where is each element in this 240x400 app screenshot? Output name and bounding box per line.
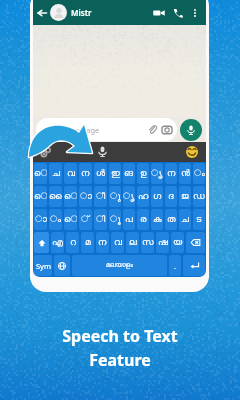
button[interactable]: പ <box>123 209 135 230</box>
staticText: ൂ <box>110 215 121 224</box>
button[interactable]: ു <box>109 186 121 207</box>
staticText: Speech to Text <box>62 325 178 347</box>
button[interactable]: ദ <box>165 186 177 207</box>
staticText: ി <box>96 215 106 224</box>
button[interactable]: ക <box>151 209 163 230</box>
button[interactable]: ാ <box>79 186 92 207</box>
staticText: യ <box>173 238 183 247</box>
staticText: ഉ <box>140 169 147 178</box>
staticText: ഇ <box>111 169 120 178</box>
button[interactable]: ൻ <box>179 163 191 184</box>
button[interactable]: ങ <box>123 163 135 184</box>
staticText: ൊ <box>64 192 77 201</box>
staticText: ല <box>129 238 137 247</box>
staticText: ൃ <box>151 169 163 178</box>
staticText: Feature <box>89 349 151 371</box>
button[interactable]: ച <box>179 209 191 230</box>
button[interactable]: Enter <box>183 255 205 276</box>
staticText: ഗ <box>153 192 162 201</box>
button[interactable]: ം <box>193 163 205 184</box>
button[interactable]: എ <box>51 232 64 253</box>
button[interactable]: വ <box>111 232 124 253</box>
button[interactable]: ം <box>49 209 62 230</box>
staticText: . <box>174 261 177 271</box>
staticText: ൻ <box>181 169 190 178</box>
button[interactable]: ഉ <box>137 163 149 184</box>
button[interactable]: വ <box>64 163 77 184</box>
button[interactable]: ഷ <box>156 232 169 253</box>
staticText: ര <box>140 215 147 224</box>
staticText: ീ <box>96 192 106 201</box>
button[interactable]: ൃ <box>123 186 135 207</box>
button[interactable]: ഹ <box>137 186 149 207</box>
button[interactable]: ൾ <box>94 163 107 184</box>
button[interactable]: Emoji <box>186 146 198 158</box>
button[interactable]: Type a message <box>36 118 177 141</box>
staticText: ാ <box>80 192 92 201</box>
staticText: ട <box>196 215 202 224</box>
button[interactable]: റ <box>66 232 79 253</box>
button[interactable]: ജ <box>179 186 191 207</box>
button[interactable]: Back <box>37 8 47 18</box>
button[interactable]: ത <box>165 209 177 230</box>
button[interactable]: ഗ <box>151 186 163 207</box>
button[interactable]: Voice input <box>97 146 108 157</box>
button[interactable]: ് <box>79 209 92 230</box>
button[interactable]: ഇ <box>109 163 121 184</box>
button[interactable]: Video call <box>153 7 165 19</box>
button[interactable]: ൈ <box>49 186 62 207</box>
staticText: ൌ <box>34 192 47 201</box>
button[interactable]: Call <box>173 8 183 18</box>
staticText: ജ <box>181 192 189 201</box>
button[interactable]: ന <box>96 232 109 253</box>
button[interactable]: Voice message <box>180 119 202 141</box>
staticText: ൊ <box>64 215 77 224</box>
button[interactable]: ല <box>126 232 139 253</box>
staticText: സ <box>142 238 154 247</box>
staticText: ച <box>52 169 60 178</box>
button[interactable]: ൂ <box>109 209 121 230</box>
button[interactable]: ൊ <box>64 186 77 207</box>
button[interactable]: ീ <box>94 186 107 207</box>
staticText: എ <box>52 238 63 247</box>
staticText: ാ <box>35 215 47 224</box>
button[interactable]: സ <box>141 232 154 253</box>
button[interactable]: ട <box>193 209 205 230</box>
button[interactable]: മലയാളം <box>72 255 167 276</box>
staticText: ന <box>167 169 176 178</box>
button[interactable]: ൃ <box>151 163 163 184</box>
button[interactable]: Shift <box>34 232 49 253</box>
button[interactable]: ച <box>49 163 62 184</box>
staticText: മ <box>85 238 91 247</box>
button[interactable]: ൌ <box>34 186 47 207</box>
button[interactable]: മ <box>81 232 94 253</box>
button[interactable]: ര <box>137 209 149 230</box>
button[interactable]: ൊ <box>34 163 47 184</box>
staticText: ം <box>50 215 61 224</box>
staticText: ൊ <box>34 169 47 178</box>
button[interactable]: Backspace <box>186 232 205 253</box>
staticText: ൾ <box>96 169 106 178</box>
button[interactable]: Settings <box>40 147 51 158</box>
button[interactable]: Sym <box>34 255 52 276</box>
staticText: വ <box>67 169 75 178</box>
button[interactable]: ന <box>79 163 92 184</box>
staticText: ഷ <box>158 238 168 247</box>
staticText: ങ <box>124 169 134 178</box>
staticText: മലയാളം <box>106 262 133 269</box>
button[interactable]: ഡ <box>193 186 205 207</box>
staticText: ഹ <box>138 192 149 201</box>
staticText: പ <box>125 215 133 224</box>
button[interactable]: ന <box>165 163 177 184</box>
button[interactable]: ാ <box>34 209 47 230</box>
staticText: ച <box>181 215 189 224</box>
staticText: വ <box>114 238 122 247</box>
button[interactable]: More options <box>190 8 200 18</box>
staticText: ് <box>81 215 90 224</box>
button[interactable]: Language <box>54 255 70 276</box>
button[interactable]: . <box>169 255 181 276</box>
button[interactable]: ൊ <box>64 209 77 230</box>
button[interactable]: ി <box>94 209 107 230</box>
staticText: റ <box>70 238 76 247</box>
button[interactable]: യ <box>171 232 184 253</box>
